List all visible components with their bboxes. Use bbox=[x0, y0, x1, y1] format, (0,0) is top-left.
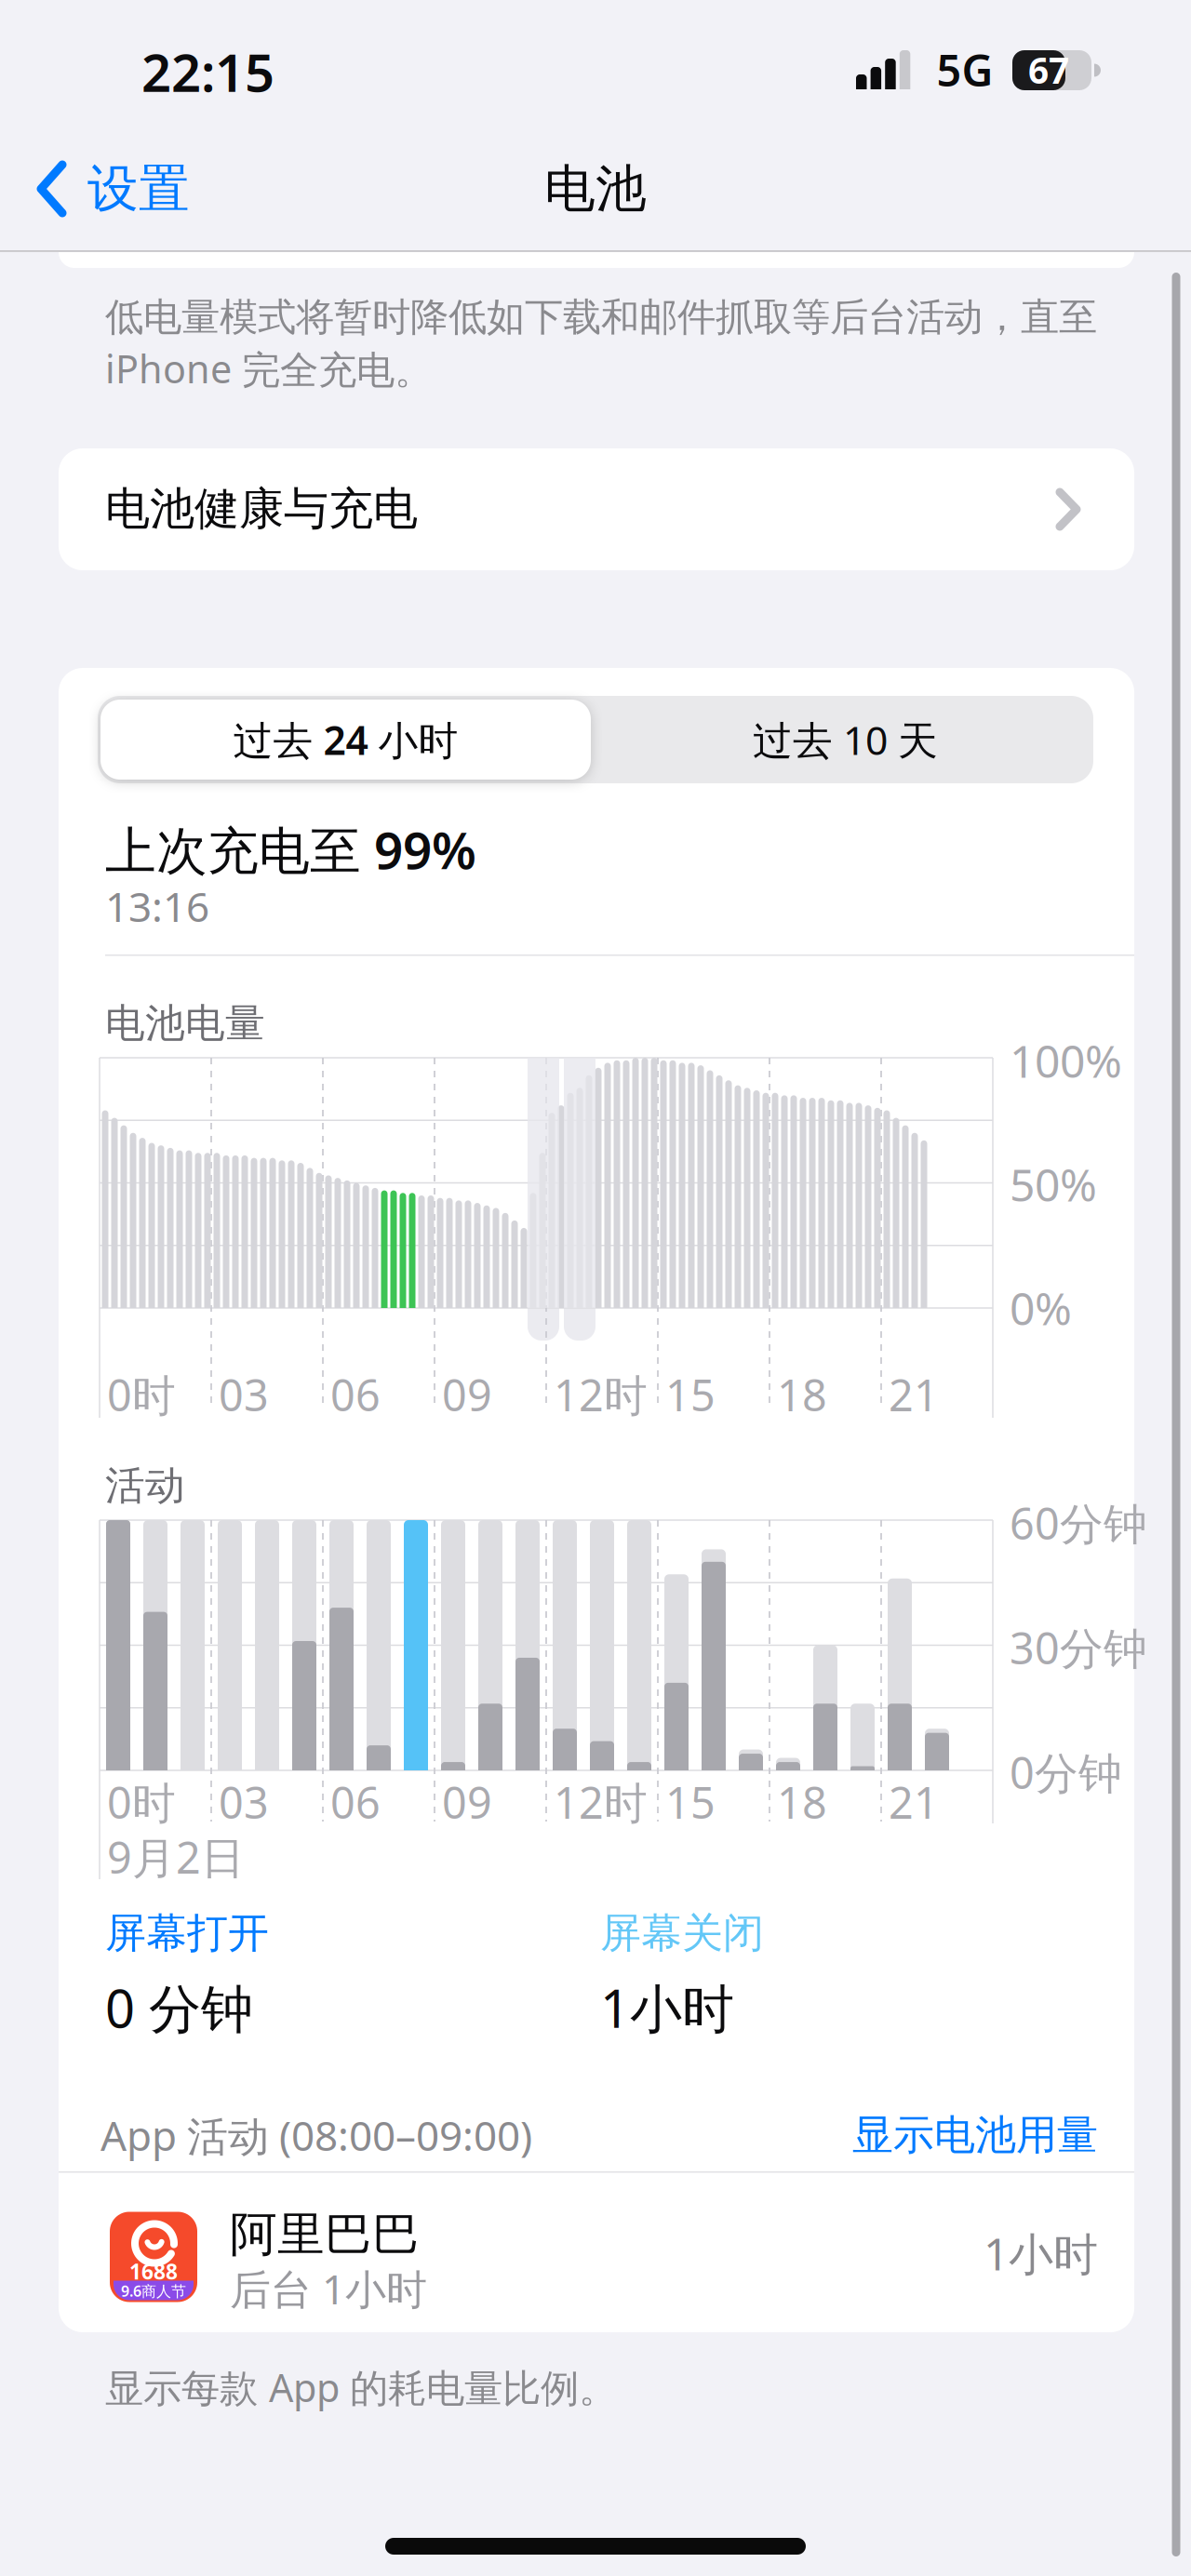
staticText: iPhone 完全充电。 bbox=[105, 343, 433, 394]
staticText: 22:15 bbox=[141, 37, 274, 106]
staticText: 上次充电至 99% bbox=[105, 816, 476, 883]
staticText: 18 bbox=[777, 1773, 827, 1831]
staticText: 屏幕打开 bbox=[105, 1908, 269, 1958]
staticText: 后台 1小时 bbox=[230, 2261, 427, 2316]
staticText: 电池电量 bbox=[105, 999, 265, 1048]
staticText: 03 bbox=[219, 1773, 269, 1831]
button[interactable]: 过去 24 小时 bbox=[100, 700, 591, 780]
staticText: 60分钟 bbox=[1010, 1494, 1147, 1552]
staticText: 12时 bbox=[554, 1773, 648, 1831]
staticText: 67 bbox=[1028, 46, 1069, 94]
staticText: 06 bbox=[330, 1366, 381, 1423]
staticText: 过去 24 小时 bbox=[233, 713, 458, 766]
staticText: App 活动 (08:00–09:00) bbox=[100, 2108, 532, 2162]
button[interactable]: 显示电池用量 bbox=[791, 2098, 1098, 2172]
staticText: 1688 bbox=[129, 2257, 178, 2285]
staticText: 显示电池用量 bbox=[852, 2110, 1098, 2160]
staticText: 100% bbox=[1010, 1031, 1122, 1090]
staticText: 1小时 bbox=[600, 1973, 734, 2042]
staticText: 09 bbox=[442, 1773, 492, 1831]
staticText: 低电量模式将暂时降低如下载和邮件抓取等后台活动，直至 bbox=[105, 294, 1097, 341]
staticText: 09 bbox=[442, 1366, 492, 1423]
staticText: 03 bbox=[219, 1366, 269, 1423]
staticText: 0 分钟 bbox=[105, 1973, 253, 2042]
button[interactable]: 电池健康与充电 bbox=[59, 448, 1134, 570]
staticText: 活动 bbox=[105, 1461, 185, 1510]
button[interactable]: 返回设置 bbox=[19, 147, 270, 231]
staticText: 0时 bbox=[107, 1366, 176, 1423]
staticText: 12时 bbox=[554, 1366, 648, 1423]
staticText: 电池健康与充电 bbox=[105, 481, 418, 536]
staticText: 5G bbox=[937, 41, 993, 99]
staticText: 21 bbox=[889, 1366, 939, 1423]
staticText: 9.6商人节 bbox=[121, 2281, 186, 2301]
staticText: 电池 bbox=[544, 158, 647, 220]
staticText: 阿里巴巴 bbox=[230, 2206, 420, 2264]
staticText: 15 bbox=[665, 1366, 716, 1423]
staticText: 设置 bbox=[87, 158, 190, 220]
staticText: 15 bbox=[665, 1773, 716, 1831]
staticText: 30分钟 bbox=[1010, 1619, 1147, 1676]
staticText: 06 bbox=[330, 1773, 381, 1831]
staticText: 50% bbox=[1010, 1155, 1097, 1214]
staticText: 1小时 bbox=[984, 2224, 1098, 2283]
staticText: 21 bbox=[889, 1773, 939, 1831]
staticText: 13:16 bbox=[105, 879, 209, 933]
staticText: 9月2日 bbox=[107, 1828, 245, 1886]
staticText: 过去 10 天 bbox=[753, 713, 938, 766]
staticText: 0% bbox=[1010, 1278, 1072, 1338]
staticText: 18 bbox=[777, 1366, 827, 1423]
button[interactable]: 1688 bbox=[59, 2177, 1134, 2338]
staticText: 0分钟 bbox=[1010, 1743, 1122, 1801]
button[interactable]: 过去 10 天 bbox=[600, 700, 1091, 780]
staticText: 0时 bbox=[107, 1773, 176, 1831]
staticText: 屏幕关闭 bbox=[600, 1908, 764, 1958]
staticText: 显示每款 App 的耗电量比例。 bbox=[105, 2362, 617, 2413]
